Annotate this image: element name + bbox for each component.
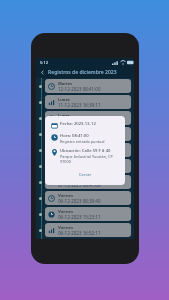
staticText: 06-12-2023 08:39:40 <box>58 198 101 204</box>
staticText: Lunes <box>58 97 70 102</box>
staticText: Hora: 08:41:00 <box>60 133 89 139</box>
staticText: Viernes <box>58 193 73 198</box>
button[interactable]: Back <box>36 66 48 78</box>
button[interactable]: Martes <box>45 79 131 93</box>
staticText: Lunes <box>58 113 70 118</box>
button[interactable]: Viernes <box>45 127 131 141</box>
button[interactable]: Jueves <box>45 175 131 189</box>
button[interactable]: Viernes <box>45 143 131 157</box>
staticText: 06-12-2023 15:23:11 <box>58 214 101 220</box>
button[interactable]: Viernes <box>45 191 131 205</box>
staticText: Registros de diciembre 2023 <box>48 69 117 76</box>
staticText: 07-12-2023 08:41:09 <box>58 182 101 188</box>
staticText: 97000 <box>60 159 71 164</box>
staticText: Ubicación: Calle 59 F # 40 <box>60 148 111 154</box>
staticText: Viernes <box>58 225 73 230</box>
staticText: Parque Industrial Yucatán, CP <box>60 154 113 159</box>
staticText: 08-12-2023 08:40:55 <box>58 150 101 156</box>
staticText: 06-12-2023 16:52:11 <box>58 230 101 236</box>
staticText: 11-12-2023 16:39:11 <box>58 102 101 108</box>
staticText: Registro entrada puntual <box>60 139 105 144</box>
staticText: 5:12 <box>40 60 48 65</box>
button[interactable]: Viernes <box>45 223 131 237</box>
button[interactable]: Cerrar <box>74 170 97 179</box>
staticText: Fecha: 2023-12-12 <box>60 121 96 127</box>
staticText: 11-12-2023 08:38:21 <box>58 118 101 124</box>
button[interactable]: Lunes <box>45 95 131 109</box>
staticText: 12-12-2023 08:41:00 <box>58 86 101 92</box>
staticText: Martes <box>58 81 73 86</box>
staticText: Cerrar <box>79 172 92 177</box>
staticText: Viernes <box>58 145 73 150</box>
staticText: 08-12-2023 16:42:03 <box>58 134 101 140</box>
button[interactable]: Jueves <box>45 159 131 173</box>
button[interactable]: Lunes <box>45 111 131 125</box>
staticText: Jueves <box>58 161 71 166</box>
button[interactable]: Viernes <box>45 207 131 221</box>
staticText: Viernes <box>58 209 73 214</box>
